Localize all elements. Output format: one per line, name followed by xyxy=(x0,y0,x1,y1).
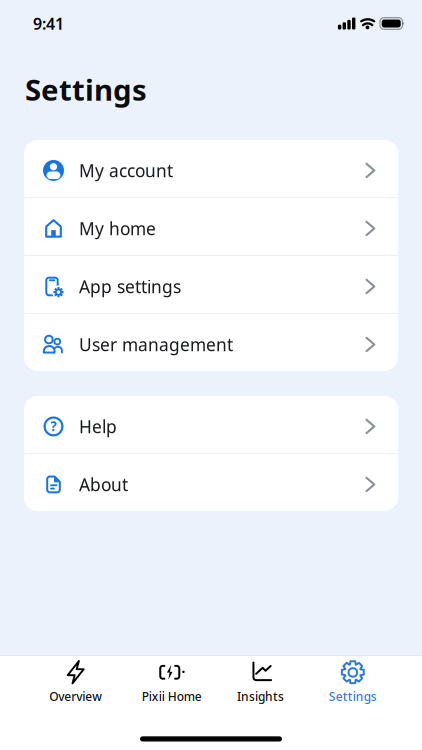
staticText: User management xyxy=(79,333,233,356)
button[interactable]: Insights xyxy=(214,660,307,704)
button[interactable]: ? xyxy=(24,396,398,453)
button[interactable]: Pixii Home xyxy=(122,660,214,704)
staticText: App settings xyxy=(79,275,181,298)
button[interactable]: About xyxy=(24,454,398,511)
button[interactable]: Settings xyxy=(307,660,399,704)
button[interactable]: My home xyxy=(24,198,398,255)
staticText: About xyxy=(79,473,128,496)
staticText: Settings xyxy=(25,70,147,109)
staticText: My account xyxy=(79,159,173,182)
button[interactable]: My account xyxy=(24,140,398,197)
staticText: Pixii Home xyxy=(142,688,202,704)
staticText: ? xyxy=(50,417,56,435)
staticText: 9:41 xyxy=(33,13,64,34)
button[interactable]: App settings xyxy=(24,256,398,313)
staticText: My home xyxy=(79,217,156,240)
staticText: Settings xyxy=(329,688,377,704)
staticText: Overview xyxy=(49,688,102,704)
button[interactable]: User management xyxy=(24,314,398,371)
staticText: Insights xyxy=(237,688,284,704)
button[interactable]: Overview xyxy=(29,660,122,704)
staticText: Help xyxy=(79,415,117,438)
